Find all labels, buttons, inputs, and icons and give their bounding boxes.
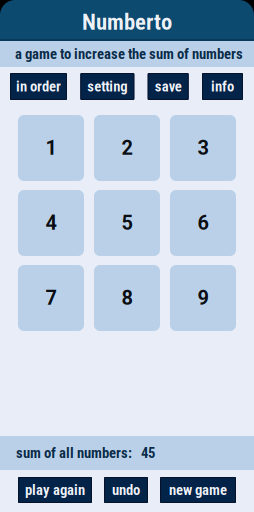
staticText: Numberto bbox=[82, 9, 172, 35]
button[interactable]: 7 bbox=[18, 265, 84, 331]
staticText: 8 bbox=[121, 286, 132, 310]
staticText: 4 bbox=[45, 211, 56, 235]
button[interactable]: 1 bbox=[18, 115, 84, 181]
staticText: setting bbox=[87, 78, 127, 95]
button[interactable]: setting bbox=[80, 73, 134, 100]
staticText: save bbox=[155, 78, 182, 95]
staticText: 45 bbox=[141, 444, 155, 462]
staticText: 7 bbox=[45, 286, 56, 310]
staticText: 3 bbox=[197, 136, 208, 160]
staticText: 5 bbox=[121, 211, 132, 235]
button[interactable]: 5 bbox=[94, 190, 160, 256]
button[interactable]: info bbox=[202, 73, 243, 100]
button[interactable]: 8 bbox=[94, 265, 160, 331]
button[interactable]: 3 bbox=[170, 115, 236, 181]
staticText: play again bbox=[25, 481, 85, 499]
staticText: info bbox=[211, 78, 234, 95]
button[interactable]: 6 bbox=[170, 190, 236, 256]
button[interactable]: 9 bbox=[170, 265, 236, 331]
staticText: 6 bbox=[197, 211, 208, 235]
staticText: in order bbox=[16, 78, 61, 95]
staticText: sum of all numbers: bbox=[16, 444, 132, 462]
button[interactable]: 2 bbox=[94, 115, 160, 181]
staticText: a game to increase the sum of numbers bbox=[15, 45, 243, 63]
staticText: 2 bbox=[121, 136, 132, 160]
staticText: 1 bbox=[45, 136, 56, 160]
staticText: undo bbox=[112, 481, 140, 499]
button[interactable]: play again bbox=[18, 477, 92, 503]
button[interactable]: 4 bbox=[18, 190, 84, 256]
button[interactable]: save bbox=[148, 73, 189, 100]
button[interactable]: in order bbox=[10, 73, 67, 100]
button[interactable]: new game bbox=[160, 477, 236, 503]
staticText: new game bbox=[169, 481, 227, 499]
button[interactable]: undo bbox=[104, 477, 148, 503]
staticText: 9 bbox=[197, 286, 208, 310]
